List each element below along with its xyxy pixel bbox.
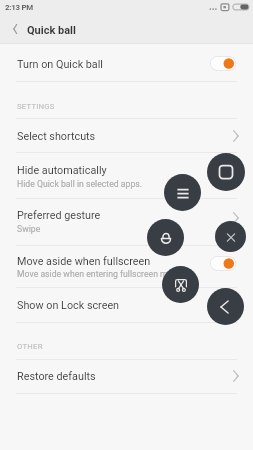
staticText: Preferred gesture	[17, 209, 101, 222]
staticText: Hide Quick ball in selected apps.	[17, 179, 143, 189]
staticText: Swipe	[17, 224, 41, 234]
button[interactable]	[0, 287, 253, 322]
button[interactable]	[0, 44, 253, 81]
staticText: Hide automatically	[17, 164, 107, 177]
button[interactable]	[0, 198, 253, 245]
staticText: OTHER	[17, 342, 43, 351]
staticText: Turn on Quick ball	[17, 58, 103, 71]
staticText: SETTINGS	[17, 102, 55, 111]
button[interactable]: Menu	[164, 174, 201, 211]
button[interactable]	[0, 152, 253, 198]
button[interactable]: Screenshot	[162, 266, 199, 303]
button[interactable]: Lock screen	[147, 219, 184, 256]
staticText: Show on Lock screen	[17, 299, 120, 312]
staticText: Move aside when entering fullscreen mode…	[17, 269, 185, 279]
staticText: Move aside when fullscreen	[17, 255, 151, 268]
button[interactable]: Toggle	[210, 56, 236, 71]
staticText: Select shortcuts	[17, 130, 96, 143]
staticText: Restore defaults	[17, 370, 96, 383]
button[interactable]: Close	[215, 221, 246, 252]
button[interactable]	[0, 359, 253, 393]
button[interactable]	[0, 245, 253, 287]
button[interactable]: Back	[207, 288, 244, 325]
button[interactable]	[0, 119, 253, 152]
button[interactable]: Recents	[207, 153, 245, 191]
button[interactable]: Toggle	[210, 256, 236, 271]
staticText: 2:13 PM	[5, 3, 34, 12]
button[interactable]: Back	[4, 17, 28, 41]
staticText: Quick ball	[27, 24, 76, 37]
